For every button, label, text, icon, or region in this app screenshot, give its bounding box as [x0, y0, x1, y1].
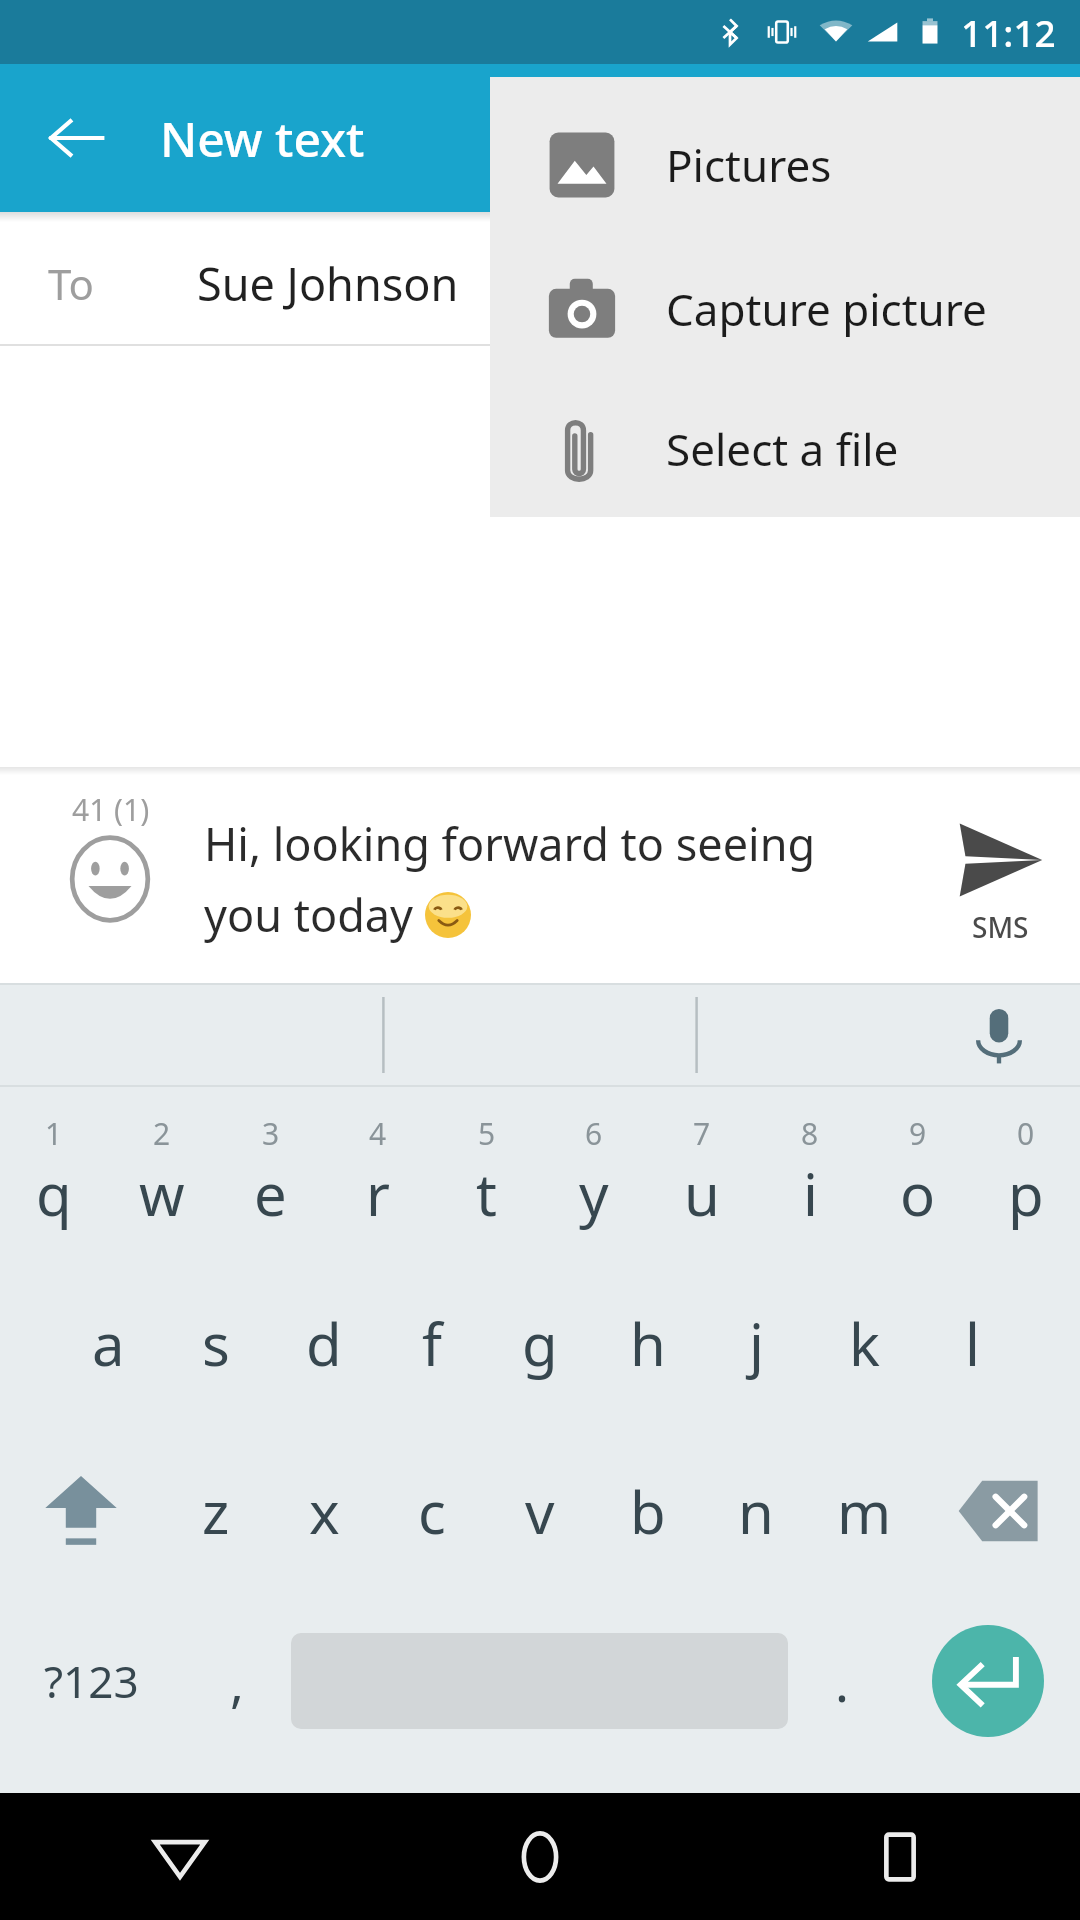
button[interactable]: f: [378, 1259, 486, 1427]
staticText: t: [476, 1154, 497, 1233]
button[interactable]: 0: [972, 1087, 1080, 1259]
button[interactable]: 8: [756, 1087, 864, 1259]
staticText: Pictures: [666, 135, 832, 195]
button[interactable]: j: [702, 1259, 810, 1427]
button[interactable]: Capture picture: [490, 237, 1080, 381]
button[interactable]: Home: [360, 1793, 720, 1920]
button[interactable]: c: [378, 1427, 486, 1595]
staticText: New text: [160, 106, 365, 171]
button[interactable]: 3: [216, 1087, 324, 1259]
staticText: 0: [1017, 1113, 1035, 1154]
staticText: 41 (1): [72, 789, 150, 830]
button[interactable]: Insert emoji: [62, 831, 158, 927]
button[interactable]: x: [270, 1427, 378, 1595]
button[interactable]: .: [788, 1595, 896, 1767]
staticText: v: [525, 1472, 555, 1551]
staticText: g: [522, 1304, 558, 1383]
staticText: .: [835, 1646, 849, 1717]
staticText: ,: [230, 1646, 244, 1717]
button[interactable]: 5: [432, 1087, 540, 1259]
staticText: you today: [204, 884, 425, 945]
button[interactable]: h: [594, 1259, 702, 1427]
button[interactable]: l: [918, 1259, 1026, 1427]
button[interactable]: s: [162, 1259, 270, 1427]
staticText: i: [803, 1154, 818, 1233]
staticText: 1: [45, 1113, 63, 1154]
button[interactable]: v: [486, 1427, 594, 1595]
staticText: b: [630, 1472, 666, 1551]
staticText: 11:12: [961, 7, 1056, 57]
button[interactable]: m: [810, 1427, 918, 1595]
staticText: s: [202, 1304, 230, 1383]
staticText: h: [630, 1304, 666, 1383]
staticText: z: [202, 1472, 230, 1551]
button[interactable]: 9: [864, 1087, 972, 1259]
button[interactable]: To: [0, 222, 1080, 344]
button[interactable]: Enter: [932, 1625, 1044, 1737]
staticText: e: [254, 1154, 287, 1233]
staticText: 8: [801, 1113, 819, 1154]
staticText: ?123: [44, 1651, 139, 1711]
staticText: d: [306, 1304, 342, 1383]
staticText: Capture picture: [666, 279, 987, 339]
staticText: 5: [478, 1113, 496, 1154]
button[interactable]: z: [162, 1427, 270, 1595]
button[interactable]: Select a file: [490, 381, 1080, 517]
button[interactable]: 1: [0, 1087, 108, 1259]
staticText: r: [366, 1154, 390, 1233]
button[interactable]: ,: [183, 1595, 291, 1767]
staticText: 9: [909, 1113, 927, 1154]
staticText: w: [139, 1154, 185, 1233]
button[interactable]: Send SMS: [920, 775, 1080, 983]
button[interactable]: ?123: [0, 1595, 183, 1767]
staticText: Sue Johnson: [197, 253, 459, 314]
staticText: 3: [262, 1113, 280, 1154]
staticText: p: [1008, 1154, 1044, 1233]
staticText: o: [900, 1154, 936, 1233]
staticText: n: [738, 1472, 774, 1551]
staticText: y: [579, 1154, 609, 1233]
button[interactable]: 4: [324, 1087, 432, 1259]
button[interactable]: 6: [540, 1087, 648, 1259]
staticText: Hi, looking forward to seeing: [204, 813, 816, 874]
button[interactable]: Shift: [0, 1427, 162, 1595]
staticText: u: [684, 1154, 720, 1233]
staticText: q: [36, 1154, 72, 1233]
staticText: x: [309, 1472, 340, 1551]
staticText: 6: [585, 1113, 603, 1154]
staticText: f: [422, 1304, 442, 1383]
button[interactable]: Back: [0, 1793, 360, 1920]
staticText: k: [849, 1304, 880, 1383]
staticText: 7: [693, 1113, 711, 1154]
button[interactable]: 2: [108, 1087, 216, 1259]
staticText: Select a file: [666, 419, 899, 479]
button[interactable]: Recents: [720, 1793, 1080, 1920]
staticText: 4: [369, 1113, 387, 1154]
button[interactable]: 7: [648, 1087, 756, 1259]
button[interactable]: Back: [30, 92, 122, 184]
staticText: a: [92, 1304, 125, 1383]
button[interactable]: g: [486, 1259, 594, 1427]
staticText: 2: [153, 1113, 171, 1154]
button[interactable]: k: [810, 1259, 918, 1427]
button[interactable]: Voice input: [954, 990, 1044, 1080]
button[interactable]: a: [54, 1259, 162, 1427]
staticText: l: [965, 1304, 980, 1383]
staticText: m: [837, 1472, 892, 1551]
button[interactable]: d: [270, 1259, 378, 1427]
staticText: c: [418, 1472, 446, 1551]
button[interactable]: Backspace: [918, 1427, 1080, 1595]
staticText: j: [749, 1304, 764, 1383]
button[interactable]: Pictures: [490, 93, 1080, 237]
button[interactable]: b: [594, 1427, 702, 1595]
button[interactable]: n: [702, 1427, 810, 1595]
staticText: To: [48, 255, 94, 312]
staticText: SMS: [972, 908, 1029, 946]
